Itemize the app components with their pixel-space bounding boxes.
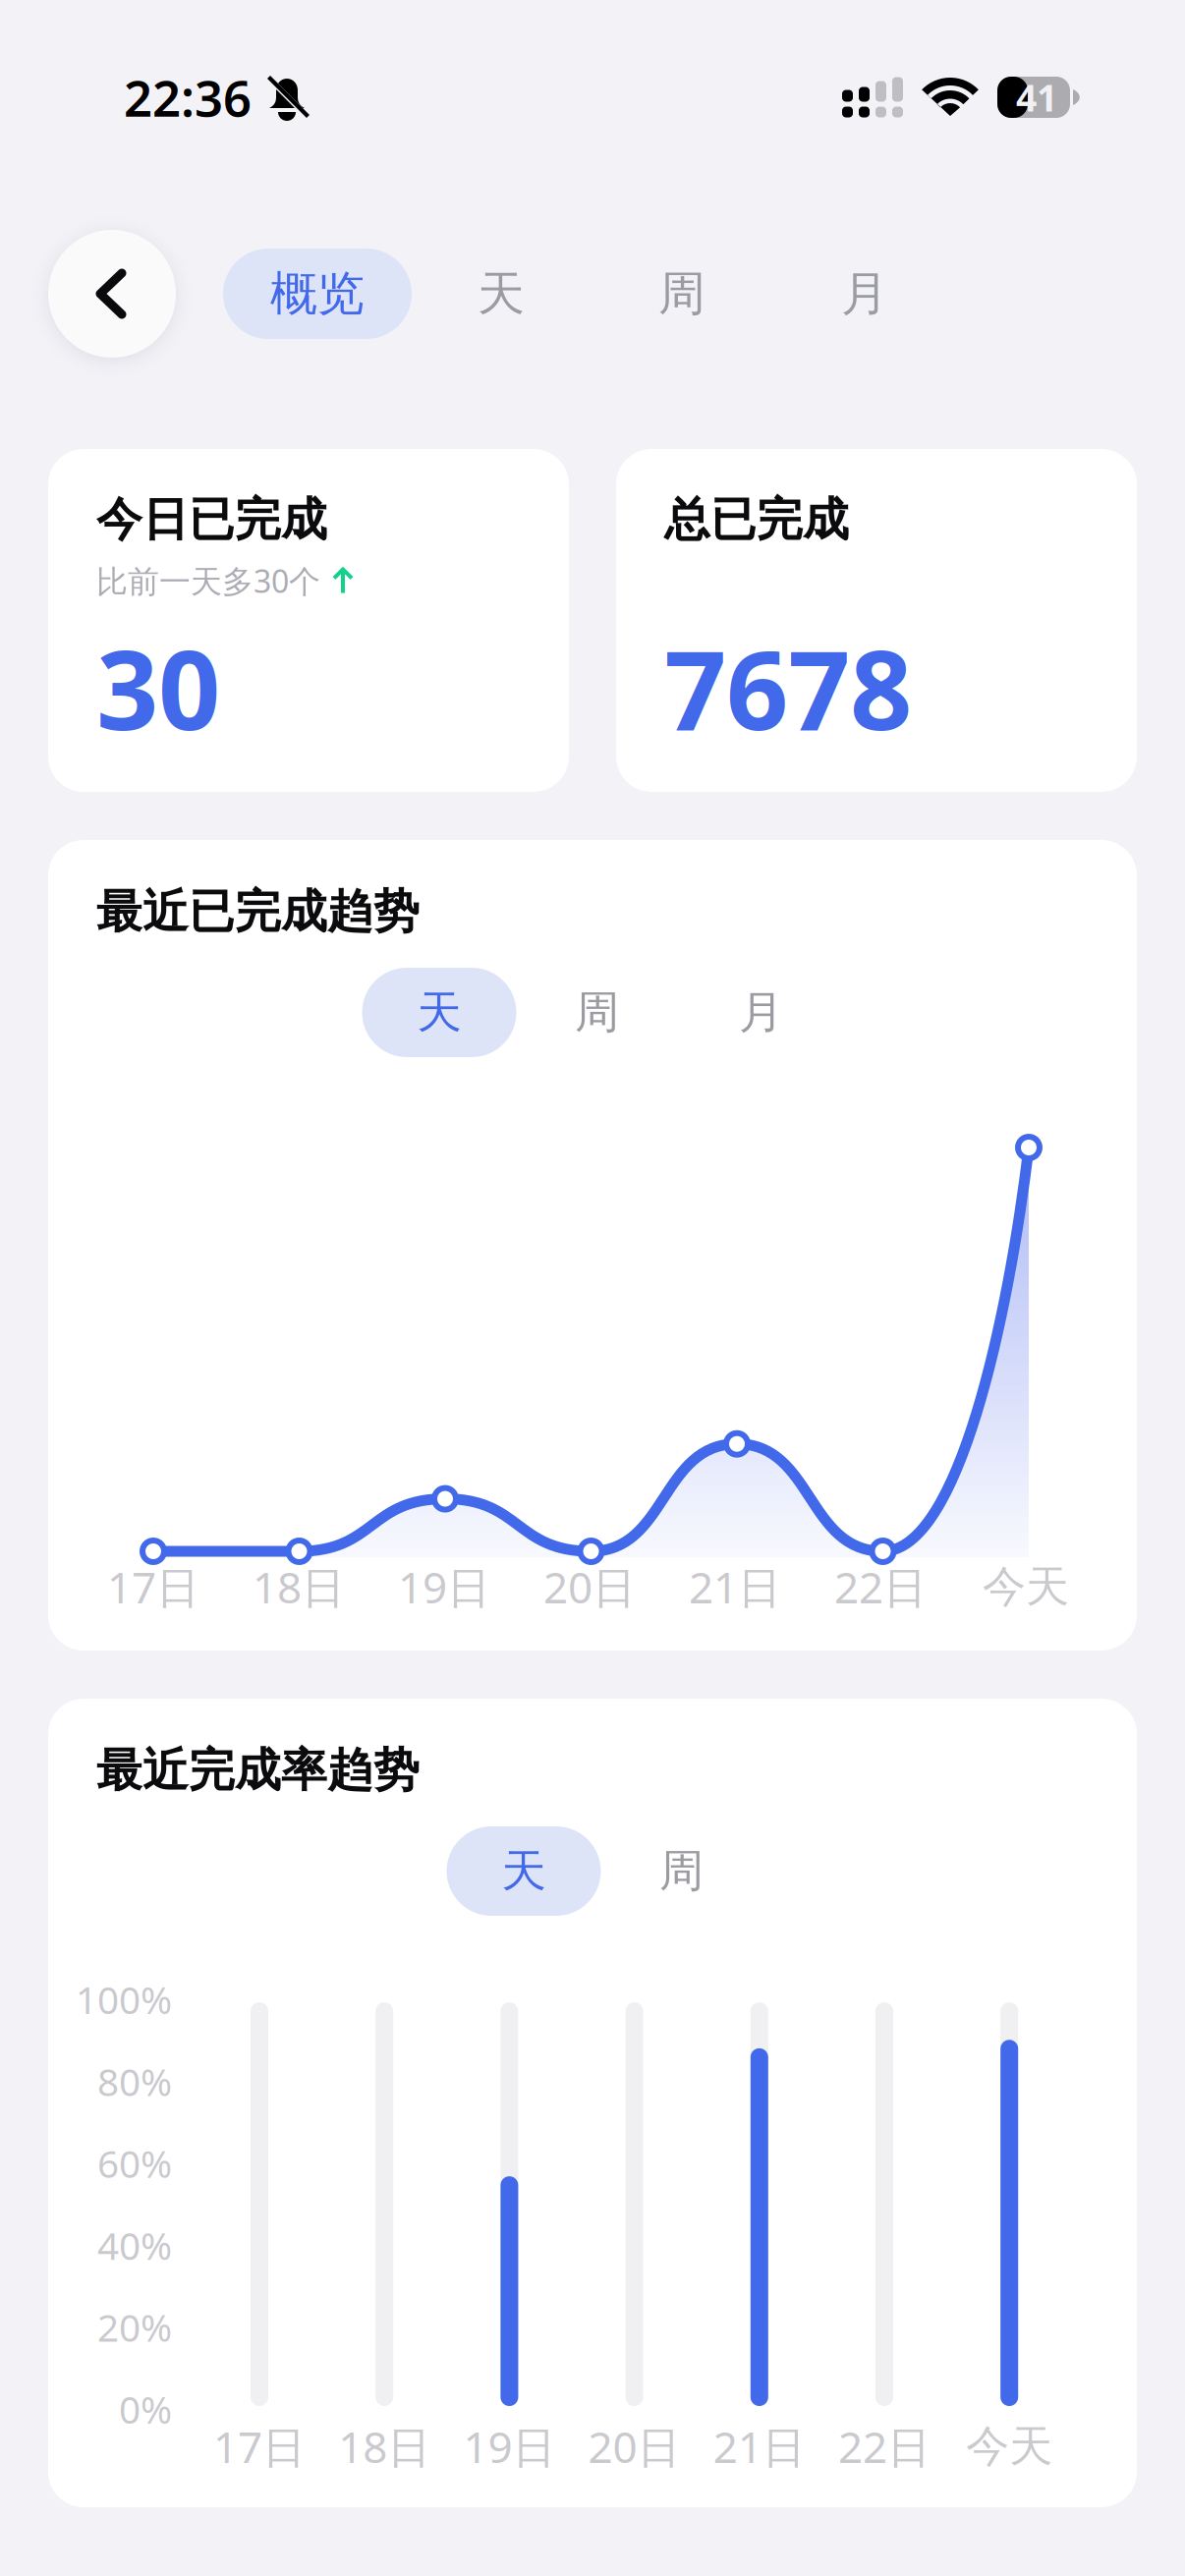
staticText: 7678 bbox=[664, 616, 912, 760]
button[interactable]: 月 bbox=[677, 968, 845, 1057]
staticText: 19日 bbox=[463, 2418, 556, 2475]
staticText: 18日 bbox=[338, 2418, 431, 2475]
button[interactable]: 天 bbox=[362, 968, 516, 1057]
staticText: 18日 bbox=[253, 1558, 345, 1615]
staticText: 天 bbox=[478, 265, 525, 323]
staticText: 60% bbox=[97, 2138, 172, 2188]
button[interactable]: 周 bbox=[516, 968, 677, 1057]
button[interactable]: 月 bbox=[773, 249, 956, 339]
button[interactable]: 天 bbox=[447, 1826, 601, 1916]
button[interactable]: 周 bbox=[591, 249, 773, 339]
staticText: 21日 bbox=[713, 2418, 806, 2475]
staticText: 天 bbox=[502, 1844, 546, 1898]
staticText: 17日 bbox=[107, 1558, 199, 1615]
staticText: 周 bbox=[575, 985, 619, 1040]
staticText: 总已完成 bbox=[664, 492, 849, 548]
staticText: 天 bbox=[417, 985, 461, 1040]
staticText: 22日 bbox=[838, 2418, 931, 2475]
staticText: 20日 bbox=[588, 2418, 681, 2475]
staticText: 22日 bbox=[834, 1558, 927, 1615]
button[interactable]: 周 bbox=[601, 1826, 762, 1916]
staticText: 100% bbox=[76, 1974, 172, 2024]
staticText: 周 bbox=[658, 265, 705, 323]
staticText: 0% bbox=[119, 2384, 172, 2434]
staticText: 月 bbox=[841, 265, 888, 323]
button[interactable]: 概览 bbox=[223, 249, 412, 339]
staticText: 80% bbox=[97, 2056, 172, 2106]
staticText: 20日 bbox=[543, 1558, 636, 1615]
staticText: 最近完成率趋势 bbox=[96, 1742, 420, 1798]
button[interactable]: Back bbox=[48, 230, 176, 358]
staticText: 21日 bbox=[689, 1558, 781, 1615]
button[interactable]: 天 bbox=[412, 249, 591, 339]
staticText: 今天 bbox=[966, 2420, 1053, 2473]
staticText: 概览 bbox=[270, 265, 365, 323]
staticText: 19日 bbox=[398, 1558, 490, 1615]
staticText: 今日已完成 bbox=[96, 492, 327, 548]
staticText: 30 bbox=[96, 616, 220, 760]
staticText: 22:36 bbox=[124, 64, 252, 130]
staticText: 20% bbox=[97, 2302, 172, 2352]
staticText: 40% bbox=[97, 2220, 172, 2270]
staticText: 最近已完成趋势 bbox=[96, 884, 420, 940]
staticText: 今天 bbox=[983, 1560, 1069, 1613]
staticText: 比前一天多30个 bbox=[96, 560, 320, 602]
staticText: 41 bbox=[1016, 73, 1057, 122]
staticText: 月 bbox=[739, 985, 783, 1040]
staticText: 17日 bbox=[213, 2418, 306, 2475]
staticText: 周 bbox=[659, 1844, 704, 1898]
